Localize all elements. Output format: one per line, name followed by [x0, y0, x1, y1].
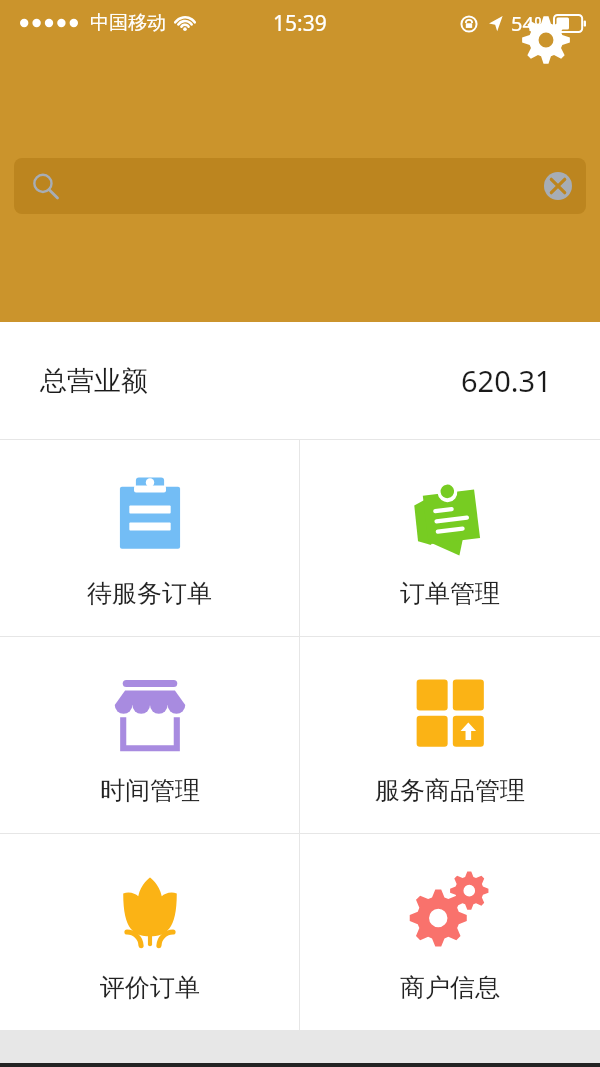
button[interactable]: 评价订单	[0, 834, 299, 1030]
staticText: 订单管理	[400, 578, 500, 609]
staticText: 15:39	[273, 9, 327, 38]
staticText: 评价订单	[100, 972, 200, 1003]
staticText: 620.31	[461, 361, 552, 400]
staticText: 商户信息	[400, 972, 500, 1003]
staticText: 总营业额	[40, 364, 148, 398]
button[interactable]: 订单管理	[300, 440, 600, 636]
button[interactable]: Clear	[544, 172, 572, 200]
button[interactable]: Settings	[522, 16, 570, 64]
staticText: 54%	[511, 10, 551, 37]
staticText: 服务商品管理	[375, 775, 525, 806]
button[interactable]: 商户信息	[300, 834, 600, 1030]
button[interactable]: 总营业额	[0, 322, 600, 439]
staticText: 待服务订单	[87, 578, 212, 609]
button[interactable]: Clear	[14, 158, 586, 214]
staticText: 中国移动	[90, 11, 166, 35]
button[interactable]: 时间管理	[0, 637, 299, 833]
button[interactable]: 服务商品管理	[300, 637, 600, 833]
staticText: 时间管理	[100, 775, 200, 806]
button[interactable]: 待服务订单	[0, 440, 299, 636]
